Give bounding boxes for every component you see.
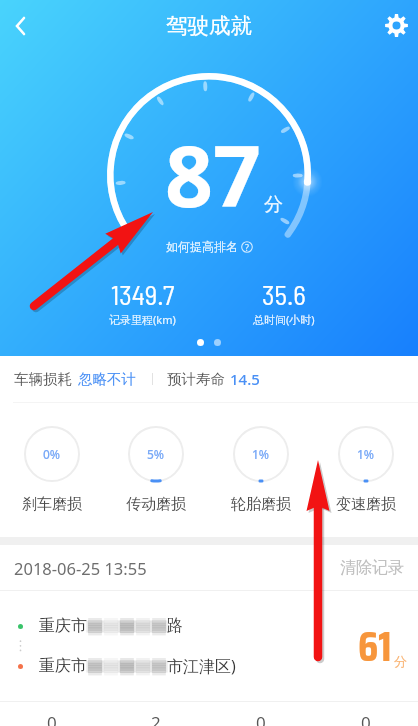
button[interactable]: 1% (313, 426, 418, 514)
staticText: 轮胎磨损 (231, 495, 291, 514)
staticText: 1% (252, 446, 270, 462)
staticText: ? (245, 241, 249, 253)
staticText: 重庆市 (39, 616, 87, 636)
staticText: 驾驶成就 (166, 12, 252, 39)
staticText: 重庆市 (39, 656, 87, 676)
staticText: 传动磨损 (126, 495, 186, 514)
button[interactable]: Back (0, 0, 44, 51)
button[interactable]: 2 (104, 703, 208, 726)
staticText: 清除记录 (340, 558, 404, 578)
staticText: 路 (167, 616, 183, 636)
button[interactable]: 重庆市 (0, 591, 418, 701)
staticText: 0% (43, 446, 61, 462)
staticText: 1349.7 (111, 278, 175, 310)
button[interactable]: 0 (0, 703, 104, 726)
staticText: 刹车磨损 (22, 495, 82, 514)
staticText: 车辆损耗 (14, 370, 72, 388)
staticText: 14.5 (230, 369, 260, 389)
staticText: 变速磨损 (336, 495, 396, 514)
staticText: 0 (47, 711, 57, 726)
button[interactable]: 0% (0, 426, 104, 514)
staticText: 2 (151, 711, 161, 726)
button[interactable]: 0 (208, 703, 313, 726)
staticText: 分 (264, 193, 283, 217)
staticText: 1% (357, 446, 375, 462)
button[interactable]: 1% (208, 426, 313, 514)
button[interactable]: 5% (104, 426, 208, 514)
staticText: 如何提高排名 (166, 239, 238, 254)
staticText: 35.6 (262, 278, 306, 310)
button[interactable]: 清除记录 (336, 554, 408, 582)
staticText: 分 (394, 653, 407, 669)
staticText: 61 (358, 612, 392, 680)
button[interactable]: 如何提高排名 (160, 237, 259, 256)
button[interactable]: 0 (313, 703, 418, 726)
staticText: 总时间(小时) (253, 312, 315, 327)
staticText: 0 (256, 711, 266, 726)
button[interactable]: Settings (374, 0, 418, 51)
staticText: 预计寿命 (167, 370, 225, 388)
staticText: 5% (147, 446, 165, 462)
staticText: 记录里程(km) (109, 312, 176, 327)
staticText: 87 (165, 117, 262, 231)
staticText: 0 (361, 711, 371, 726)
staticText: 忽略不计 (78, 370, 136, 388)
staticText: 2018-06-25 13:55 (14, 557, 147, 579)
staticText: 市江津区) (167, 655, 236, 677)
